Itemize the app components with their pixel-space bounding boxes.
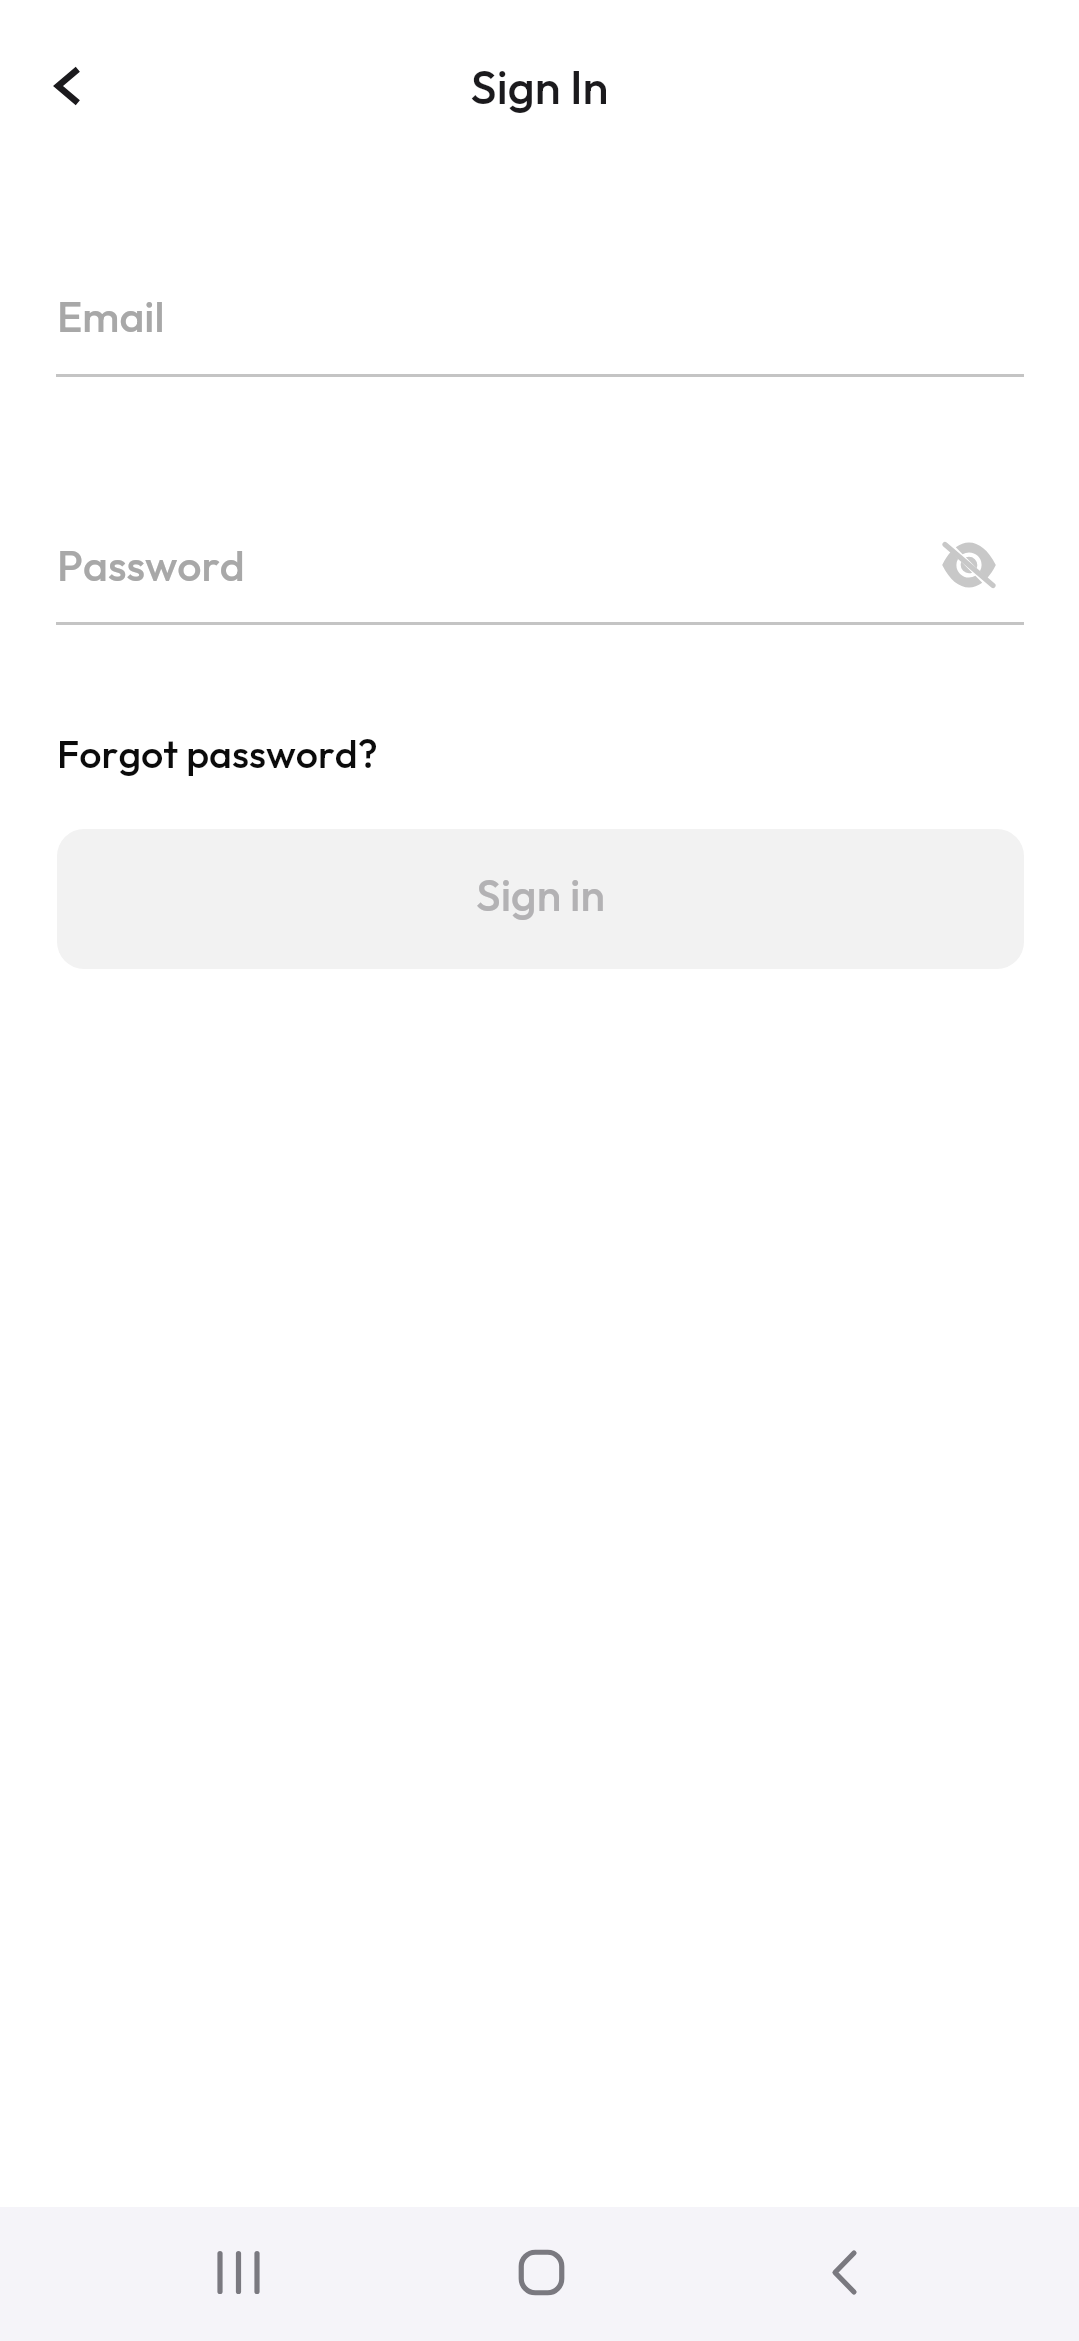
button[interactable]: Home (511, 2242, 572, 2303)
staticText: Sign in (57, 866, 1024, 922)
button[interactable]: Back (814, 2242, 875, 2303)
staticText: Password (57, 538, 245, 592)
button[interactable]: Forgot password? (45, 717, 389, 789)
button[interactable]: Back (31, 50, 103, 122)
button[interactable]: Sign in (57, 829, 1024, 969)
staticText: Email (57, 289, 165, 343)
button[interactable]: Password (56, 519, 1024, 625)
button[interactable]: Email (56, 270, 1024, 377)
button[interactable]: Show password (936, 532, 1002, 598)
button[interactable]: Recent apps (208, 2242, 269, 2303)
staticText: Sign In (0, 57, 1079, 116)
staticText: Forgot password? (57, 728, 378, 778)
